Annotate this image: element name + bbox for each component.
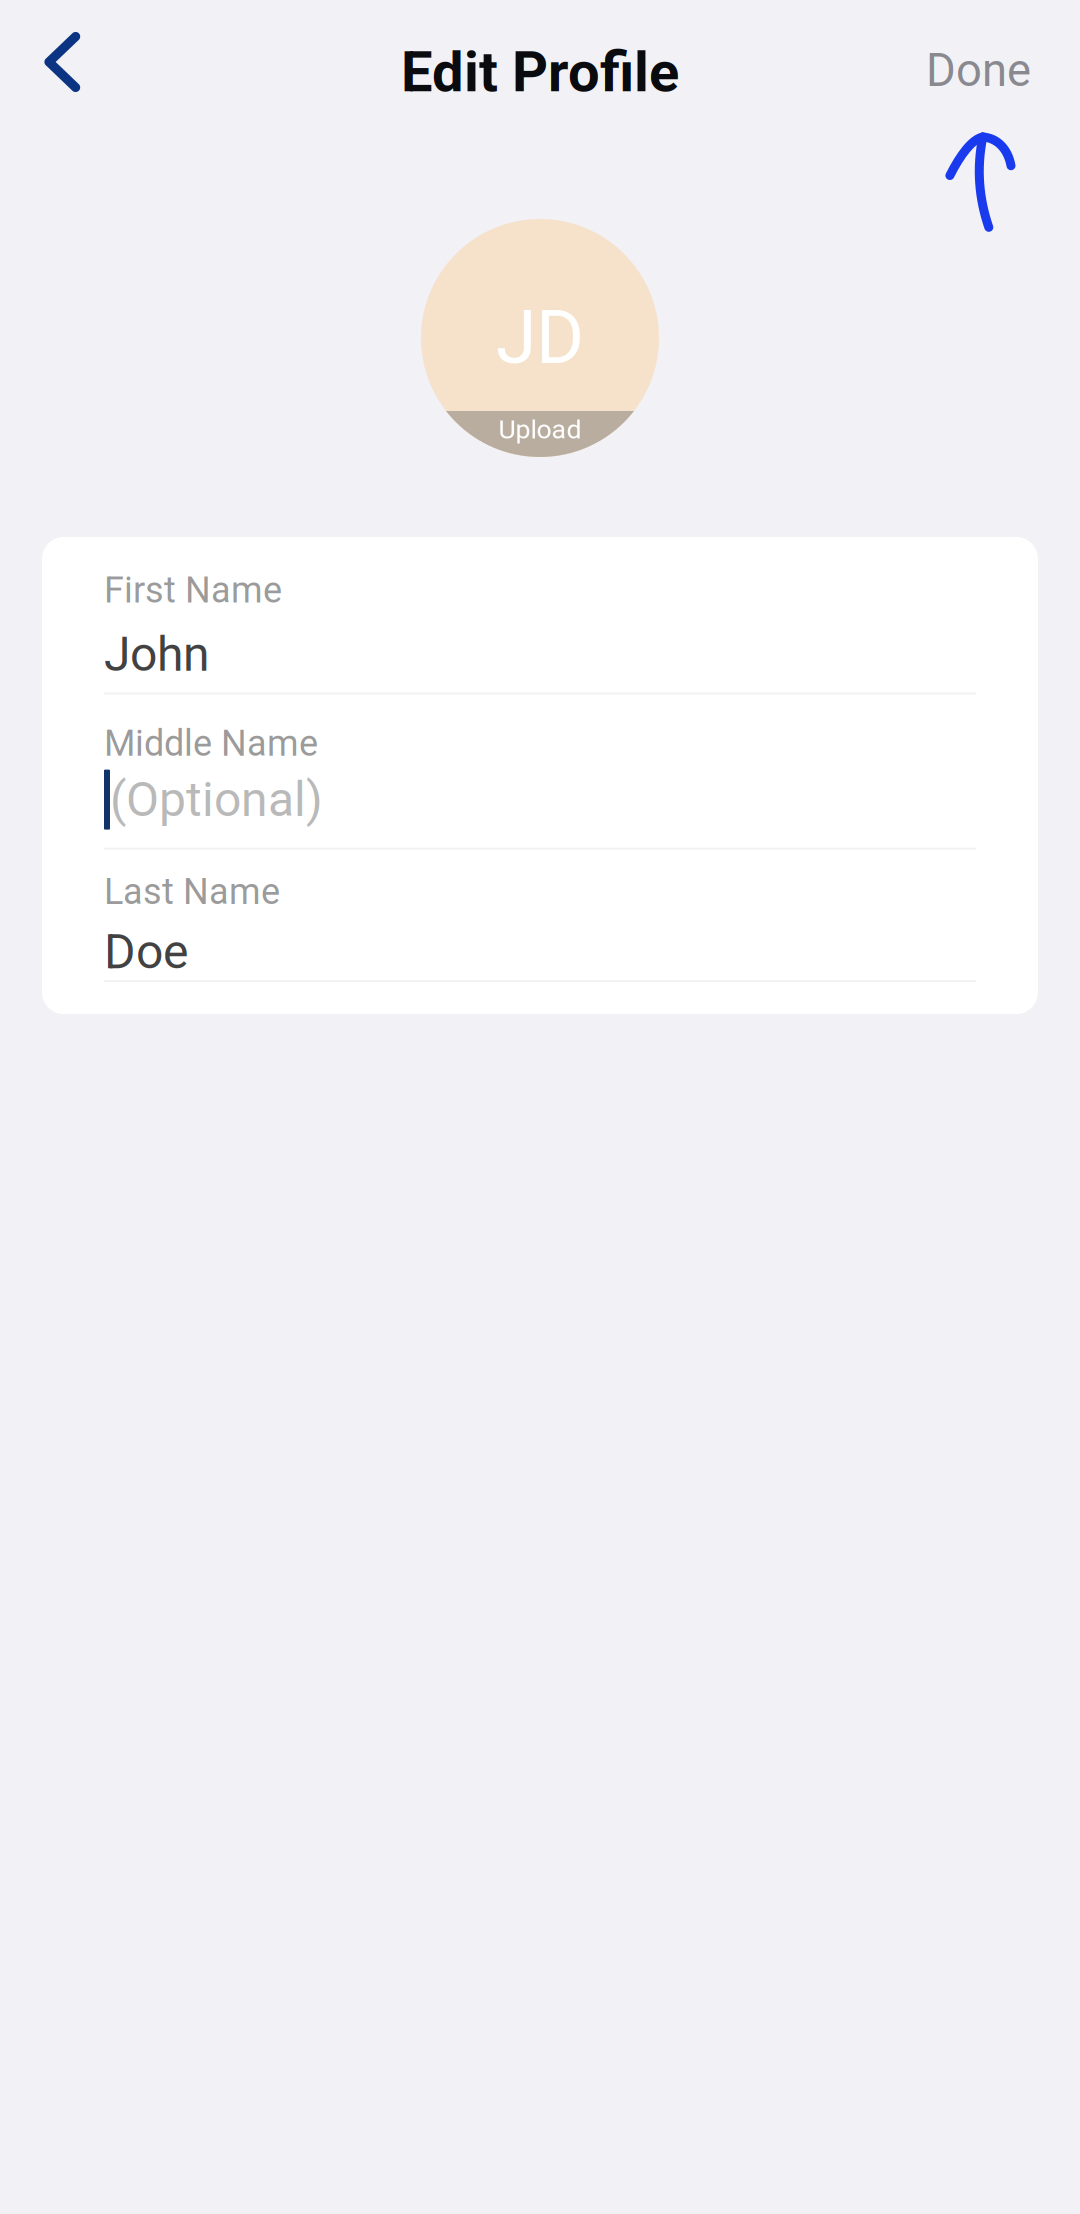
button[interactable]: Middle Name [42,694,1038,848]
staticText: Edit Profile [401,39,679,105]
staticText: Upload [498,414,581,445]
button[interactable]: Upload profile photo [421,219,659,457]
staticText: Doe [104,924,188,980]
staticText: (Optional) [110,771,323,828]
button[interactable]: Last Name [42,850,1038,980]
staticText: Done [926,44,1031,97]
staticText: Last Name [104,871,280,913]
button[interactable]: Done [896,25,1080,113]
button[interactable]: First Name [42,537,1038,692]
staticText: Middle Name [104,722,318,765]
staticText: John [104,626,210,682]
button[interactable]: Back [0,14,106,124]
staticText: JD [496,295,584,381]
staticText: First Name [104,569,282,611]
